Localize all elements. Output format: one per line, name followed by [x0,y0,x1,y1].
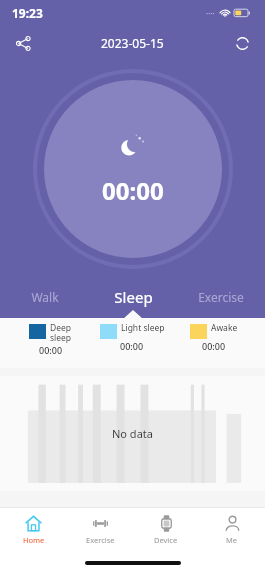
staticText: Sleep [114,287,153,307]
staticText: Walk [31,289,59,305]
staticText: Exercise [198,289,244,305]
staticText: 00:00 [102,174,164,207]
staticText: 00:00 [120,340,144,352]
button[interactable]: Share [8,28,38,58]
staticText: 00:00 [39,344,63,356]
staticText: 2023-05-15 [101,35,164,51]
button[interactable]: Deep sleep [10,322,91,356]
staticText: Me [226,535,238,545]
staticText: 19:23 [12,5,43,21]
button[interactable]: Refresh [227,28,257,58]
staticText: Deep sleep [50,322,72,343]
staticText: Awake [211,322,238,334]
button[interactable]: Light sleep [91,322,173,352]
button[interactable]: Me [199,508,265,552]
staticText: Home [23,535,45,545]
button[interactable]: Awake [173,322,255,352]
button[interactable]: Sleep [89,282,177,312]
staticText: Device [154,535,178,545]
staticText: Exercise [86,535,115,545]
button[interactable]: Walk [0,282,89,312]
button[interactable]: Exercise [67,508,133,552]
button[interactable]: Device [133,508,199,552]
button[interactable]: Exercise [177,282,265,312]
staticText: No data [112,426,153,441]
staticText: Light sleep [121,322,165,334]
button[interactable]: Home [0,508,67,552]
staticText: 00:00 [202,340,226,352]
